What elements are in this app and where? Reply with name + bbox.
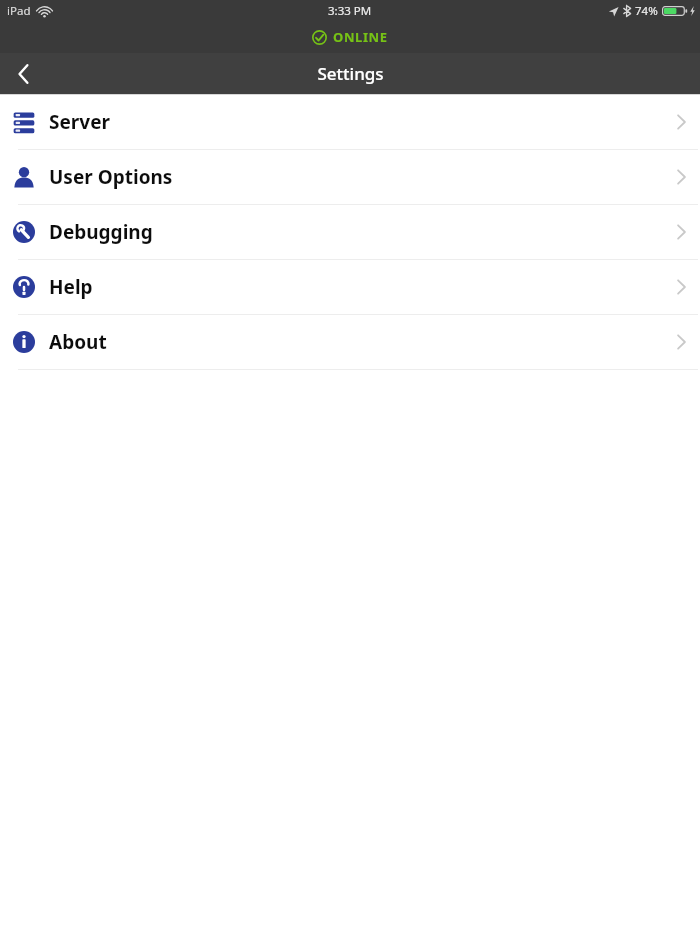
- staticText: Server: [49, 109, 110, 135]
- button[interactable]: About: [0, 315, 700, 369]
- button[interactable]: Help: [0, 260, 700, 314]
- staticText: 74%: [635, 3, 658, 19]
- button[interactable]: Server: [0, 95, 700, 149]
- staticText: iPad: [7, 3, 31, 19]
- staticText: 3:33 PM: [328, 3, 372, 19]
- button[interactable]: Back: [0, 53, 46, 94]
- staticText: Settings: [317, 62, 384, 85]
- button[interactable]: Debugging: [0, 205, 700, 259]
- staticText: Help: [49, 274, 93, 300]
- staticText: About: [49, 329, 107, 355]
- staticText: ONLINE: [333, 28, 388, 46]
- staticText: Debugging: [49, 219, 153, 245]
- button[interactable]: User Options: [0, 150, 700, 204]
- staticText: User Options: [49, 164, 173, 190]
